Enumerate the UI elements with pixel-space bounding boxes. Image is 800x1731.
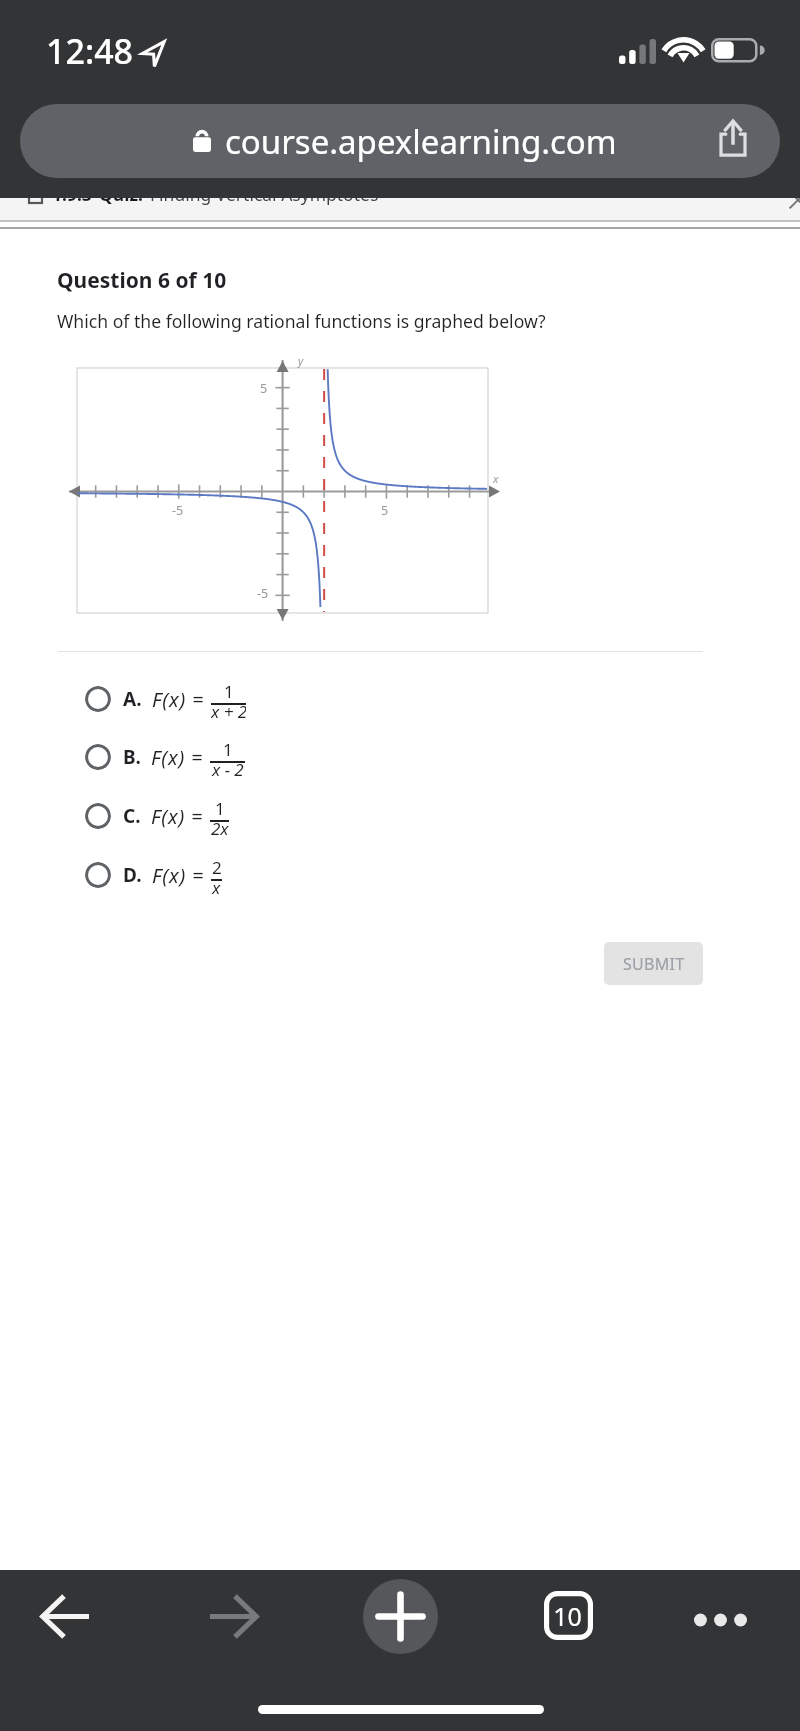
button[interactable]: A.: [0, 670, 800, 728]
staticText: SUBMIT: [623, 953, 685, 975]
staticText: 1.9.3: [52, 182, 92, 206]
staticText: x: [493, 471, 499, 486]
button[interactable]: Forward: [203, 1586, 263, 1646]
button[interactable]: Close: [786, 188, 800, 214]
button[interactable]: Back: [36, 1586, 96, 1646]
staticText: -5: [257, 585, 269, 602]
staticText: F(x) =: [152, 862, 205, 889]
staticText: Question 6 of 10: [57, 266, 227, 295]
staticText: 1: [224, 680, 234, 703]
staticText: 5: [260, 380, 268, 397]
staticText: 2: [212, 856, 222, 879]
staticText: y: [298, 353, 304, 368]
staticText: 5: [381, 502, 389, 519]
staticText: Quiz:: [99, 182, 143, 206]
staticText: A.: [123, 686, 142, 712]
button[interactable]: B.: [0, 728, 800, 786]
staticText: F(x) =: [151, 803, 204, 830]
button[interactable]: More: [670, 1590, 770, 1650]
staticText: x + 2: [211, 700, 246, 723]
button[interactable]: SUBMIT: [604, 942, 703, 985]
staticText: D.: [123, 862, 142, 888]
staticText: Finding Vertical Asymptotes: [150, 182, 379, 206]
staticText: 2x: [211, 817, 229, 840]
staticText: 10: [553, 1599, 582, 1633]
staticText: x: [212, 876, 221, 899]
staticText: Which of the following rational function…: [57, 309, 546, 333]
staticText: F(x) =: [152, 686, 205, 713]
staticText: F(x) =: [151, 744, 204, 771]
button[interactable]: New tab: [363, 1579, 438, 1654]
staticText: 12:48: [46, 28, 134, 74]
staticText: B.: [123, 744, 141, 770]
button[interactable]: Tabs, 10 open: [541, 1588, 595, 1642]
staticText: C.: [123, 803, 141, 829]
staticText: x - 2: [212, 758, 244, 781]
staticText: 1: [215, 797, 225, 820]
staticText: 1: [223, 738, 233, 761]
staticText: -5: [172, 502, 184, 519]
button[interactable]: course.apexlearning.com: [20, 104, 780, 178]
staticText: course.apexlearning.com: [225, 119, 617, 164]
button[interactable]: Share: [705, 104, 760, 175]
button[interactable]: D.: [0, 846, 800, 904]
button[interactable]: C.: [0, 787, 800, 845]
